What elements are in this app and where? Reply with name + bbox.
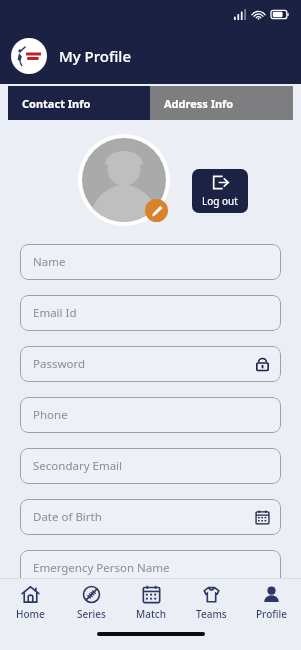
staticText: Series <box>77 607 106 621</box>
button[interactable]: Contact Info <box>8 86 150 120</box>
button[interactable]: Show password <box>255 357 270 372</box>
staticText: Email Id <box>33 305 77 321</box>
button[interactable]: Teams <box>181 585 241 627</box>
button[interactable]: Address Info <box>150 86 293 120</box>
staticText: Contact Info <box>22 96 91 111</box>
button[interactable]: Name <box>20 244 281 280</box>
staticText: Emergency Person Name <box>33 560 170 576</box>
staticText: Address Info <box>164 96 234 111</box>
staticText: Match <box>136 607 166 621</box>
staticText: Home <box>16 607 45 621</box>
staticText: Log out <box>202 194 238 208</box>
button[interactable]: Profile <box>241 585 301 627</box>
button[interactable]: Home <box>0 585 61 627</box>
button[interactable]: Phone <box>20 397 281 433</box>
button[interactable]: Pick date <box>255 510 270 525</box>
staticText: Phone <box>33 407 68 423</box>
button[interactable]: Series <box>61 585 121 627</box>
button[interactable]: Secondary Email <box>20 448 281 484</box>
staticText: Name <box>33 254 66 270</box>
staticText: My Profile <box>59 46 132 66</box>
button[interactable]: Edit photo <box>145 199 168 222</box>
button[interactable] <box>82 138 166 222</box>
button[interactable]: Log out <box>192 169 248 213</box>
button[interactable]: Password <box>20 346 281 382</box>
staticText: Profile <box>256 607 287 621</box>
button[interactable]: Match <box>121 585 181 627</box>
button[interactable]: Emergency Person Name <box>20 550 281 586</box>
staticText: Secondary Email <box>33 458 123 474</box>
staticText: Teams <box>196 607 227 621</box>
button[interactable]: Email Id <box>20 295 281 331</box>
staticText: Date of Birth <box>33 509 102 525</box>
staticText: Password <box>33 356 86 372</box>
button[interactable]: Date of Birth <box>20 499 281 535</box>
